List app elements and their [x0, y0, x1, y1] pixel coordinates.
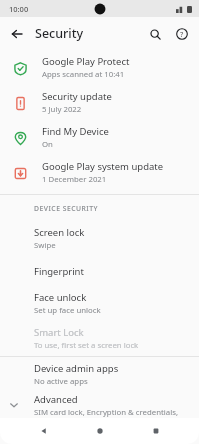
button[interactable]: Back: [31, 418, 57, 444]
staticText: Swipe: [34, 240, 56, 251]
staticText: Security update: [42, 90, 112, 103]
staticText: Set up face unlock: [34, 305, 101, 316]
staticText: Find My Device: [42, 125, 109, 138]
staticText: ?: [180, 29, 184, 39]
staticText: DEVICE SECURITY: [34, 204, 99, 213]
button[interactable]: Advanced: [0, 392, 199, 418]
staticText: Fingerprint: [34, 265, 84, 278]
staticText: On: [42, 139, 53, 150]
button[interactable]: Screen lock: [0, 221, 199, 256]
button[interactable]: Find My Device: [0, 120, 199, 155]
button[interactable]: Fingerprint: [0, 256, 199, 286]
staticText: Face unlock: [34, 291, 87, 304]
button[interactable]: Device admin apps: [0, 357, 199, 392]
staticText: 1 December 2021: [42, 174, 107, 185]
button[interactable]: Back: [5, 22, 29, 46]
staticText: No active apps: [34, 376, 88, 387]
button[interactable]: Google Play Protect: [0, 50, 199, 85]
staticText: To use, first set a screen lock: [34, 340, 139, 351]
button[interactable]: Recent apps: [143, 418, 169, 444]
button[interactable]: Search: [143, 22, 167, 46]
staticText: Smart Lock: [34, 326, 84, 339]
button[interactable]: Help: [170, 22, 194, 46]
staticText: Device admin apps: [34, 362, 119, 375]
button[interactable]: Security update: [0, 85, 199, 120]
button[interactable]: Face unlock: [0, 286, 199, 321]
button[interactable]: Home: [87, 418, 113, 444]
staticText: Security: [35, 25, 84, 42]
staticText: 10:00: [9, 4, 29, 14]
staticText: SIM card lock, Encryption & credentials,…: [34, 407, 193, 418]
staticText: Advanced: [34, 393, 78, 406]
staticText: Apps scanned at 10:41: [42, 69, 125, 80]
staticText: Screen lock: [34, 226, 85, 239]
button[interactable]: Smart Lock: [0, 321, 199, 356]
button[interactable]: Google Play system update: [0, 155, 199, 190]
staticText: Google Play system update: [42, 160, 164, 173]
staticText: Google Play Protect: [42, 55, 130, 68]
staticText: 5 July 2022: [42, 104, 82, 115]
